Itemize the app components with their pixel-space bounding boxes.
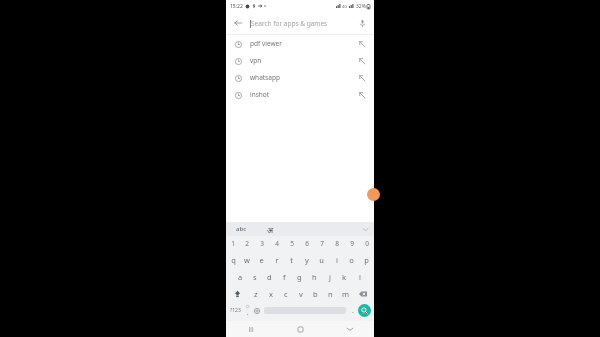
staticText: s bbox=[253, 272, 257, 282]
button[interactable]: b bbox=[308, 285, 323, 302]
button[interactable]: 9 bbox=[344, 236, 359, 251]
button[interactable]: a bbox=[233, 268, 247, 285]
button[interactable]: y bbox=[299, 251, 314, 268]
button[interactable]: w bbox=[240, 251, 254, 268]
staticText: 1 bbox=[231, 239, 235, 248]
button[interactable]: 0 bbox=[359, 236, 374, 251]
staticText: d bbox=[267, 272, 272, 282]
button[interactable]: s bbox=[247, 268, 262, 285]
button[interactable]: c bbox=[278, 285, 293, 302]
button[interactable]: i bbox=[329, 251, 344, 268]
button[interactable]: 1 bbox=[226, 236, 240, 251]
button[interactable]: 7 bbox=[314, 236, 329, 251]
button[interactable]: 3 bbox=[254, 236, 269, 251]
button[interactable]: g bbox=[292, 268, 307, 285]
staticText: x bbox=[269, 289, 273, 299]
button[interactable]: Search bbox=[358, 304, 371, 317]
staticText: 0 bbox=[365, 239, 369, 248]
button[interactable]: Insert vpn into search bbox=[355, 54, 369, 68]
staticText: 15:22 bbox=[230, 3, 243, 10]
button[interactable]: Insert pdf viewer into search bbox=[355, 37, 369, 51]
staticText: 3 bbox=[260, 239, 264, 248]
staticText: pdf viewer bbox=[250, 39, 282, 48]
button[interactable]: Emoji bbox=[252, 304, 262, 317]
staticText: 8 bbox=[335, 239, 339, 248]
staticText: 7 bbox=[320, 239, 324, 248]
button[interactable]: Home bbox=[276, 321, 325, 337]
button[interactable]: 5 bbox=[284, 236, 299, 251]
button[interactable]: Expand bbox=[359, 223, 371, 235]
button[interactable]: d bbox=[262, 268, 277, 285]
staticText: m bbox=[342, 289, 350, 299]
staticText: vpn bbox=[250, 56, 262, 65]
staticText: f bbox=[283, 272, 286, 282]
staticText: ?123 bbox=[230, 307, 241, 314]
staticText: inshot bbox=[250, 90, 270, 99]
staticText: z bbox=[254, 289, 258, 299]
button[interactable]: l bbox=[352, 268, 367, 285]
staticText: j bbox=[329, 272, 331, 282]
staticText: p bbox=[364, 255, 369, 265]
staticText: 4 bbox=[275, 239, 279, 248]
staticText: 32% bbox=[356, 3, 366, 10]
staticText: , bbox=[247, 309, 249, 317]
button[interactable]: p bbox=[359, 251, 374, 268]
staticText: i bbox=[336, 255, 338, 265]
staticText: 5 bbox=[290, 239, 294, 248]
button[interactable]: h bbox=[307, 268, 322, 285]
button[interactable]: Voice search bbox=[355, 16, 369, 30]
staticText: y bbox=[305, 255, 309, 265]
button[interactable]: . bbox=[348, 304, 358, 317]
staticText: u bbox=[319, 255, 324, 265]
button[interactable]: inshot bbox=[226, 86, 374, 103]
button[interactable]: v bbox=[293, 285, 308, 302]
button[interactable]: t bbox=[284, 251, 299, 268]
staticText: अ bbox=[267, 224, 274, 235]
button[interactable]: Comma bbox=[242, 304, 252, 317]
button[interactable]: vpn bbox=[226, 52, 374, 69]
button[interactable]: Insert inshot into search bbox=[355, 88, 369, 102]
button[interactable]: f bbox=[277, 268, 292, 285]
staticText: 6 bbox=[305, 239, 309, 248]
staticText: 4G bbox=[342, 4, 348, 9]
button[interactable]: whatsapp bbox=[226, 69, 374, 86]
button[interactable]: k bbox=[337, 268, 352, 285]
button[interactable]: 2 bbox=[240, 236, 254, 251]
button[interactable]: n bbox=[323, 285, 338, 302]
staticText: w bbox=[244, 255, 250, 265]
staticText: c bbox=[284, 289, 288, 299]
staticText: e bbox=[259, 255, 264, 265]
button[interactable]: e bbox=[254, 251, 269, 268]
button[interactable]: Shift bbox=[227, 285, 248, 302]
button[interactable]: Back bbox=[231, 16, 245, 30]
staticText: a bbox=[238, 272, 243, 282]
button[interactable]: Hide keyboard bbox=[325, 321, 374, 337]
button[interactable]: Backspace bbox=[353, 285, 373, 302]
button[interactable]: 8 bbox=[329, 236, 344, 251]
button[interactable]: ?123 bbox=[228, 304, 242, 317]
staticText: o bbox=[349, 255, 354, 265]
button[interactable]: 6 bbox=[299, 236, 314, 251]
button[interactable]: o bbox=[344, 251, 359, 268]
button[interactable]: r bbox=[269, 251, 284, 268]
button[interactable]: 4 bbox=[269, 236, 284, 251]
button[interactable]: z bbox=[248, 285, 263, 302]
button[interactable]: x bbox=[263, 285, 278, 302]
button[interactable]: m bbox=[338, 285, 353, 302]
staticText: b bbox=[313, 289, 318, 299]
button[interactable]: q bbox=[226, 251, 240, 268]
staticText: g bbox=[297, 272, 302, 282]
staticText: n bbox=[328, 289, 333, 299]
staticText: t bbox=[290, 255, 293, 265]
staticText: l bbox=[359, 272, 361, 282]
button[interactable]: Recents bbox=[226, 321, 276, 337]
staticText: h bbox=[312, 272, 317, 282]
button[interactable]: Insert whatsapp into search bbox=[355, 71, 369, 85]
button[interactable]: j bbox=[322, 268, 337, 285]
button[interactable]: अ bbox=[263, 223, 278, 236]
button[interactable]: pdf viewer bbox=[226, 35, 374, 52]
staticText: r bbox=[275, 255, 279, 265]
button[interactable]: u bbox=[314, 251, 329, 268]
button[interactable]: abc bbox=[232, 224, 251, 234]
